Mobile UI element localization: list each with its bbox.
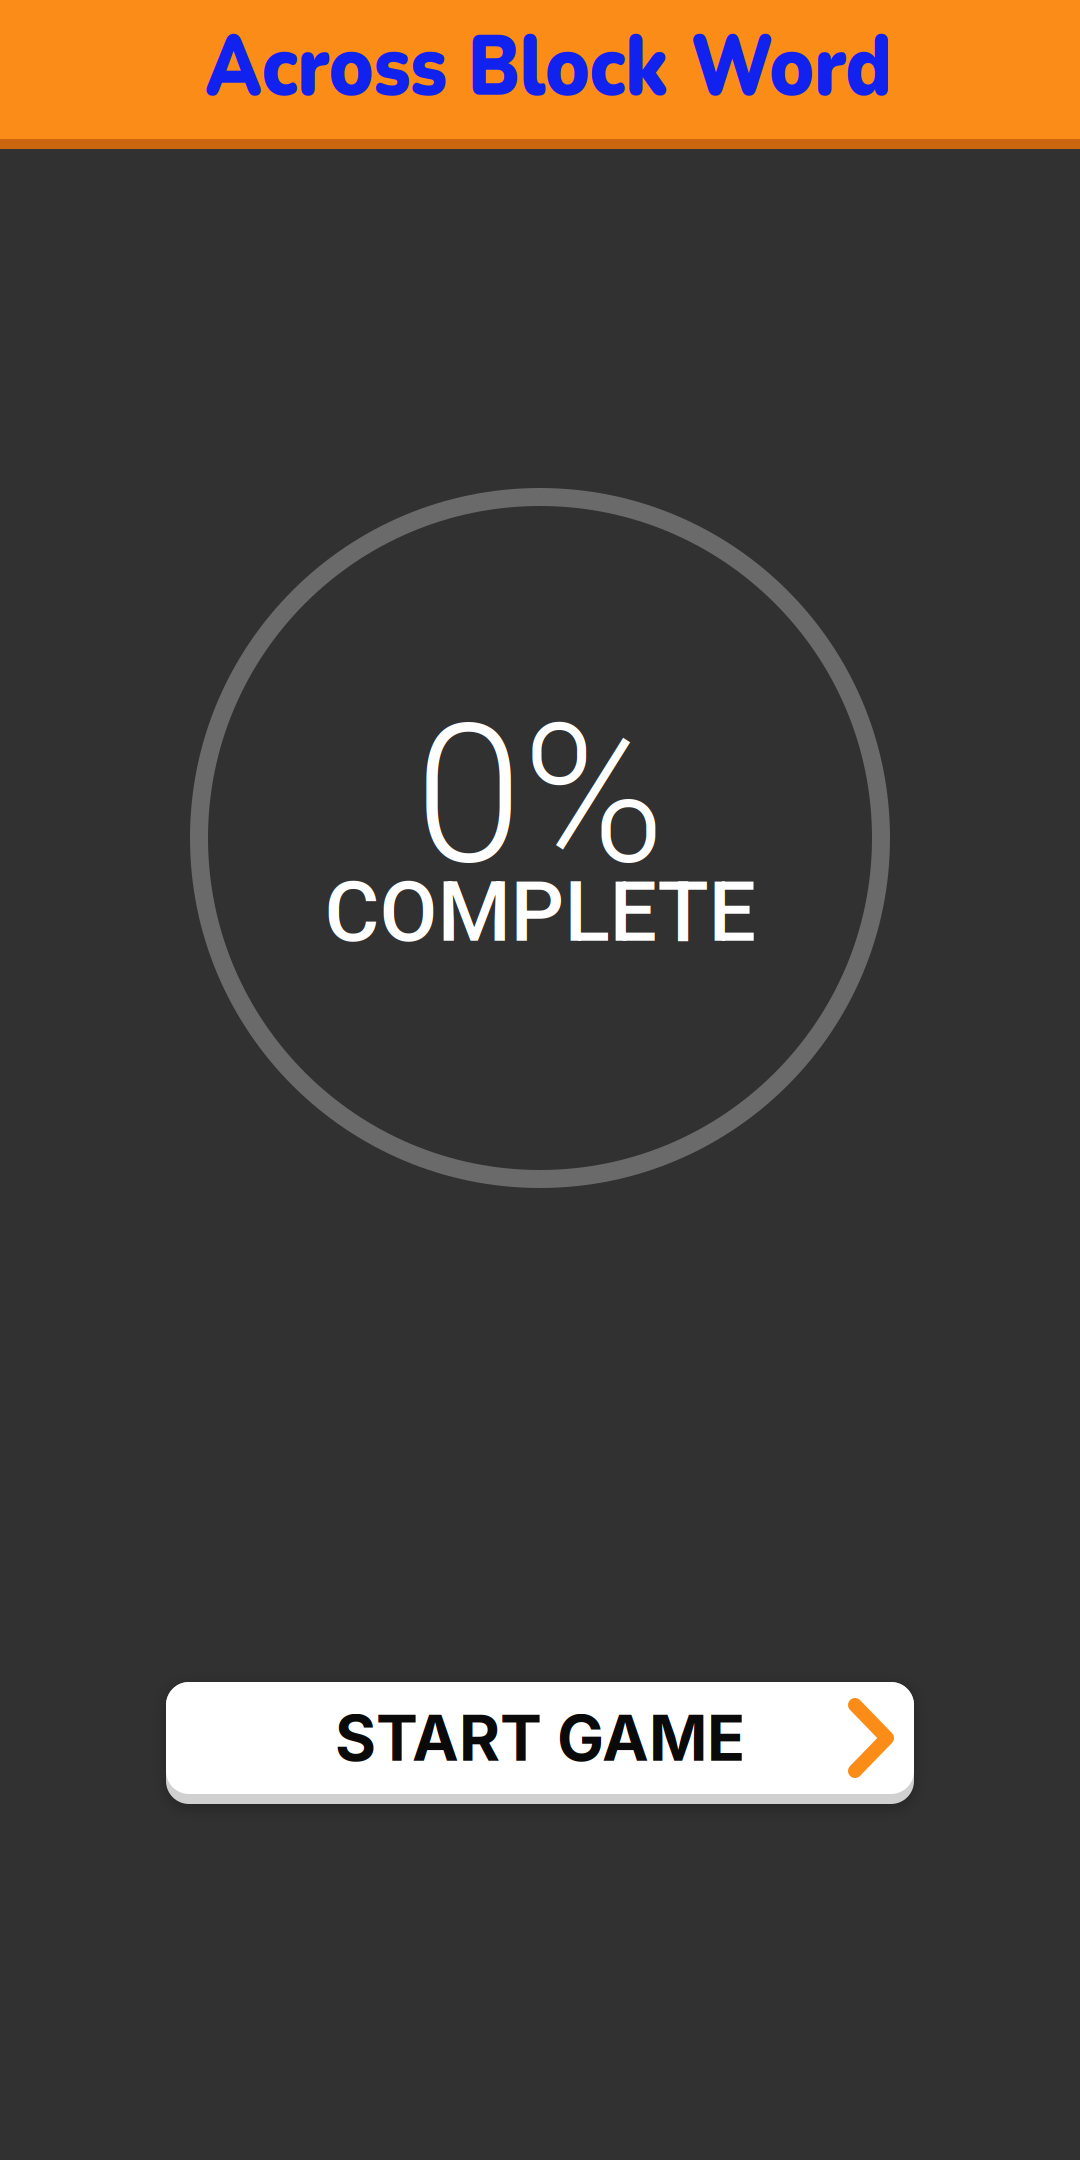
staticText: Across Block Word	[210, 16, 886, 116]
staticText: COMPLETE	[324, 863, 755, 961]
staticText: 0%	[415, 682, 665, 908]
staticText: START GAME	[335, 1700, 745, 1776]
button[interactable]: Start game	[166, 1682, 914, 1804]
